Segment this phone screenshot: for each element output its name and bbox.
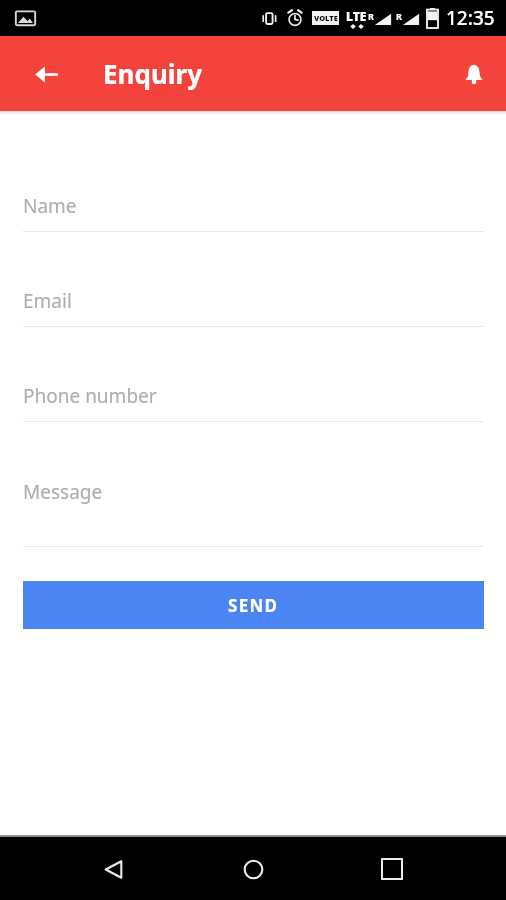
button[interactable]: Back: [83, 839, 143, 899]
button[interactable]: SEND: [23, 581, 484, 629]
button[interactable]: Home: [223, 839, 283, 899]
button[interactable]: Phone number: [23, 383, 484, 411]
staticText: VOLTE: [314, 13, 338, 23]
button[interactable]: Notifications: [450, 50, 498, 98]
button[interactable]: Name: [23, 193, 484, 221]
button[interactable]: Back: [22, 50, 70, 98]
staticText: Phone number: [23, 383, 157, 409]
staticText: Name: [23, 193, 77, 219]
staticText: R: [396, 10, 402, 22]
button[interactable]: Message: [23, 479, 484, 507]
staticText: SEND: [228, 594, 279, 617]
staticText: LTE: [346, 8, 367, 24]
staticText: Message: [23, 479, 103, 505]
staticText: R: [368, 10, 374, 22]
staticText: 12:35: [446, 5, 495, 31]
button[interactable]: Recent apps: [362, 839, 422, 899]
staticText: Enquiry: [103, 56, 203, 91]
button[interactable]: Email: [23, 288, 484, 316]
staticText: Email: [23, 288, 72, 314]
